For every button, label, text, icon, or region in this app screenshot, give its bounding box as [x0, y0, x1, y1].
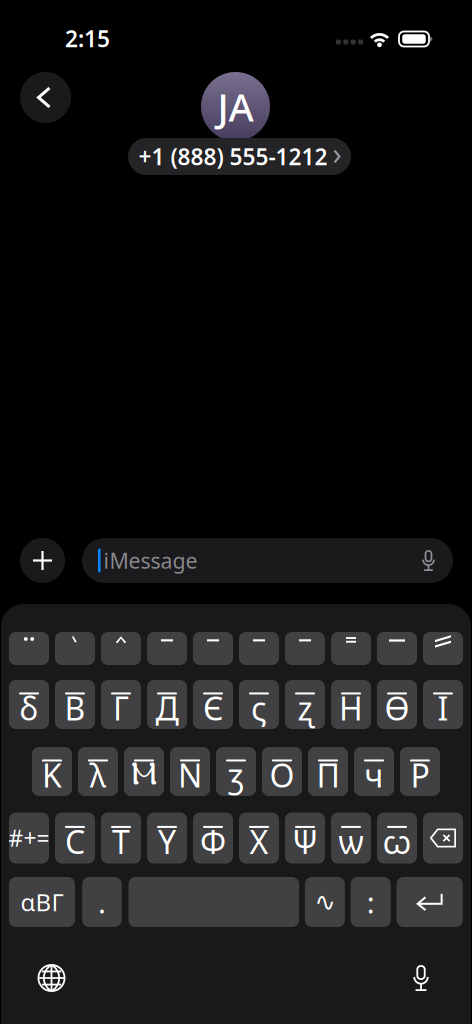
staticText: 2:15 [65, 23, 110, 53]
button[interactable]: δ [9, 680, 49, 729]
button[interactable]: ς [239, 680, 279, 729]
button[interactable]: I [423, 680, 463, 729]
staticText: X [249, 820, 268, 863]
button[interactable]: X [239, 812, 279, 863]
staticText: H [339, 687, 363, 729]
staticText: ʐ [297, 687, 312, 729]
staticText: Ф [200, 820, 226, 863]
button[interactable]: Accent 7 [285, 632, 325, 665]
staticText: Є [203, 687, 223, 729]
button[interactable]: ɑВГ [9, 877, 75, 927]
button[interactable]: Dictate [399, 956, 443, 1000]
button[interactable]: ∿ [305, 877, 345, 927]
button[interactable]: Accent 4 [147, 632, 187, 665]
button[interactable]: O [262, 747, 302, 796]
button[interactable]: Contact details [128, 138, 351, 175]
staticText: ʒ [228, 754, 244, 796]
staticText: B [64, 687, 85, 729]
button[interactable]: : [351, 877, 391, 927]
staticText: ∿ [314, 888, 335, 916]
staticText: #+= [8, 823, 49, 853]
staticText: O [269, 754, 294, 796]
button[interactable]: P [400, 747, 440, 796]
button[interactable]: Delete [423, 812, 463, 863]
button[interactable]: Accent 8 [331, 632, 371, 665]
staticText: +1 (888) 555-1212 [138, 141, 327, 171]
button[interactable]: Ф [193, 812, 233, 863]
staticText: ч [364, 754, 383, 796]
staticText: : [367, 882, 375, 921]
staticText: П [316, 754, 339, 796]
staticText: Γ [113, 687, 129, 729]
button[interactable]: П [308, 747, 348, 796]
button[interactable]: Ѳ [377, 680, 417, 729]
staticText: P [410, 754, 429, 796]
staticText: ς [251, 687, 267, 729]
staticText: ɑВГ [20, 886, 63, 918]
staticText: ꙍ [382, 820, 411, 863]
button[interactable]: λ [78, 747, 118, 796]
button[interactable] [128, 877, 299, 927]
button[interactable]: Accent 3 [101, 632, 141, 665]
button[interactable]: Accent 5 [193, 632, 233, 665]
button[interactable]: ʒ [216, 747, 256, 796]
button[interactable]: Message field [82, 538, 453, 583]
button[interactable]: Є [193, 680, 233, 729]
button[interactable]: Accent 9 [377, 632, 417, 665]
button[interactable]: K [32, 747, 72, 796]
button[interactable]: Γ [101, 680, 141, 729]
button[interactable]: Ⲙ [124, 747, 164, 796]
button[interactable]: Accent 6 [239, 632, 279, 665]
staticText: Y [158, 820, 176, 863]
staticText: JA [217, 81, 253, 132]
button[interactable]: ʐ [285, 680, 325, 729]
button[interactable]: T [101, 812, 141, 863]
staticText: K [42, 754, 62, 796]
button[interactable]: Switch keyboard [29, 956, 73, 1000]
staticText: N [178, 754, 202, 796]
button[interactable]: Accent 1 [9, 632, 49, 665]
staticText: Д [155, 687, 178, 729]
button[interactable]: ꙍ [377, 812, 417, 863]
staticText: Ⲙ [131, 759, 157, 791]
button[interactable]: Return [396, 877, 463, 927]
button[interactable]: Back [20, 72, 71, 123]
button[interactable]: H [331, 680, 371, 729]
button[interactable]: N [170, 747, 210, 796]
button[interactable]: ч [354, 747, 394, 796]
button[interactable]: B [55, 680, 95, 729]
staticText: C [65, 820, 85, 863]
button[interactable]: Contact avatar [201, 72, 270, 141]
staticText: δ [19, 687, 38, 729]
button[interactable]: Accent 10 [423, 632, 463, 665]
button[interactable]: Ψ [285, 812, 325, 863]
button[interactable]: Accent 2 [55, 632, 95, 665]
button[interactable]: C [55, 812, 95, 863]
button[interactable]: ѡ [331, 812, 371, 863]
staticText: Ѳ [384, 687, 409, 729]
button[interactable]: Add attachment [20, 538, 65, 583]
staticText: I [437, 687, 448, 729]
button[interactable]: . [82, 877, 122, 927]
button[interactable]: Д [147, 680, 187, 729]
staticText: Ψ [292, 820, 318, 863]
staticText: ѡ [338, 820, 363, 863]
staticText: iMessage [104, 546, 198, 575]
staticText: λ [89, 754, 106, 796]
staticText: T [112, 820, 130, 863]
button[interactable]: #+= [9, 812, 49, 863]
button[interactable]: Y [147, 812, 187, 863]
staticText: . [98, 882, 106, 921]
